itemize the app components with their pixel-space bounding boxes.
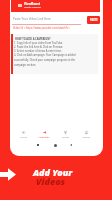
- button[interactable]: PASTE: [87, 16, 100, 24]
- staticText: Wallet: [62, 135, 69, 138]
- staticText: Home: [20, 135, 27, 138]
- staticText: Video Id = https://www.youtube.com/watch…: [13, 26, 70, 30]
- staticText: Paste Your Video Link Here: [13, 17, 51, 21]
- staticText: 4. Click on Add campaign. Your Campaign …: [14, 53, 76, 67]
- staticText: Profile: [82, 135, 90, 138]
- staticText: Campaign: [38, 135, 50, 138]
- button[interactable]: Home: [15, 131, 31, 138]
- staticText: ViewBoost: [24, 2, 41, 6]
- staticText: 1. Copy link of your video from YouTube.: [14, 41, 64, 45]
- staticText: Videos: [36, 175, 66, 187]
- staticText: Points: 1050493: [24, 6, 41, 9]
- staticText: 2. Paste the link here & Click on Previe…: [14, 45, 63, 49]
- button[interactable]: Campaign: [36, 131, 52, 138]
- staticText: Add Your: [33, 166, 73, 178]
- staticText: PASTE: [90, 18, 98, 22]
- button[interactable]: Profile: [78, 131, 94, 138]
- button[interactable]: Wallet: [57, 131, 73, 138]
- staticText: HOW TO ADD A CAMPAIGN?: [15, 37, 51, 41]
- staticText: 3. Select number of views & enter time.: [14, 49, 62, 53]
